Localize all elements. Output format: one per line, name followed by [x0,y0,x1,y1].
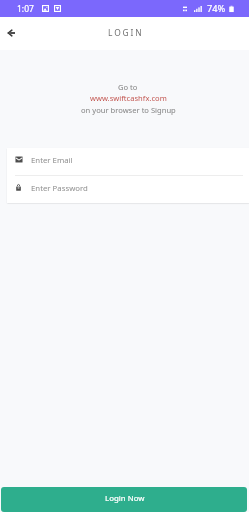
button[interactable]: Login Now [1,487,247,512]
button[interactable]: Enter Password [7,176,249,203]
staticText: Enter Email [31,155,73,166]
staticText: www.swiftcashfx.com [90,93,167,103]
staticText: Login Now [105,493,145,504]
button[interactable]: Back [1,23,21,43]
staticText: Go to [118,82,138,92]
staticText: LOGIN [108,27,144,38]
staticText: 1:07 [17,3,34,15]
button[interactable]: Enter Email [7,148,249,175]
staticText: 74% [207,2,226,15]
staticText: Enter Password [31,183,88,194]
staticText: on your browser to Signup [81,105,176,115]
